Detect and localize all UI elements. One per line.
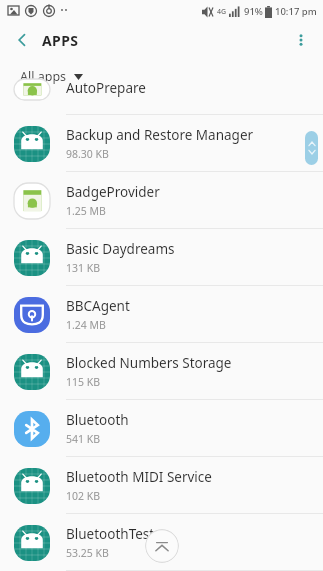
staticText: 131 KB bbox=[66, 261, 101, 275]
button[interactable]: More options bbox=[287, 26, 315, 54]
button[interactable]: Basic Daydreams bbox=[0, 229, 323, 286]
staticText: BadgeProvider bbox=[66, 183, 160, 201]
button[interactable]: BluetoothTest bbox=[0, 514, 323, 571]
staticText: Backup and Restore Manager bbox=[66, 126, 254, 144]
staticText: 541 KB bbox=[66, 432, 101, 446]
staticText: Blocked Numbers Storage bbox=[66, 354, 232, 372]
button[interactable]: Bluetooth MIDI Service bbox=[0, 457, 323, 514]
staticText: 115 KB bbox=[66, 375, 101, 389]
button[interactable]: Scroll to top bbox=[145, 529, 179, 563]
staticText: Basic Daydreams bbox=[66, 240, 175, 258]
staticText: Bluetooth bbox=[66, 411, 129, 429]
button[interactable]: Backup and Restore Manager bbox=[0, 115, 323, 172]
staticText: 4G bbox=[217, 7, 227, 17]
staticText: 1.25 MB bbox=[66, 204, 106, 218]
staticText: AutoPrepare bbox=[66, 79, 146, 97]
staticText: 53.25 KB bbox=[66, 546, 109, 560]
button[interactable]: Back bbox=[8, 26, 36, 54]
button[interactable]: BBCAgent bbox=[0, 286, 323, 343]
button[interactable]: Bluetooth bbox=[0, 400, 323, 457]
button[interactable]: AutoPrepare bbox=[0, 94, 323, 115]
button[interactable]: BadgeProvider bbox=[0, 172, 323, 229]
staticText: APPS bbox=[42, 31, 79, 50]
staticText: 10:17 pm bbox=[275, 5, 317, 18]
staticText: 98.30 KB bbox=[66, 147, 109, 161]
staticText: All apps bbox=[20, 68, 67, 85]
staticText: BBCAgent bbox=[66, 297, 130, 315]
button[interactable]: Blocked Numbers Storage bbox=[0, 343, 323, 400]
button[interactable]: All apps bbox=[12, 63, 91, 90]
staticText: Bluetooth MIDI Service bbox=[66, 468, 212, 486]
staticText: 102 KB bbox=[66, 489, 101, 503]
staticText: BluetoothTest bbox=[66, 525, 155, 543]
staticText: 1.24 MB bbox=[66, 318, 106, 332]
button[interactable]: Scrollbar bbox=[305, 131, 318, 165]
staticText: 91% bbox=[244, 5, 263, 18]
